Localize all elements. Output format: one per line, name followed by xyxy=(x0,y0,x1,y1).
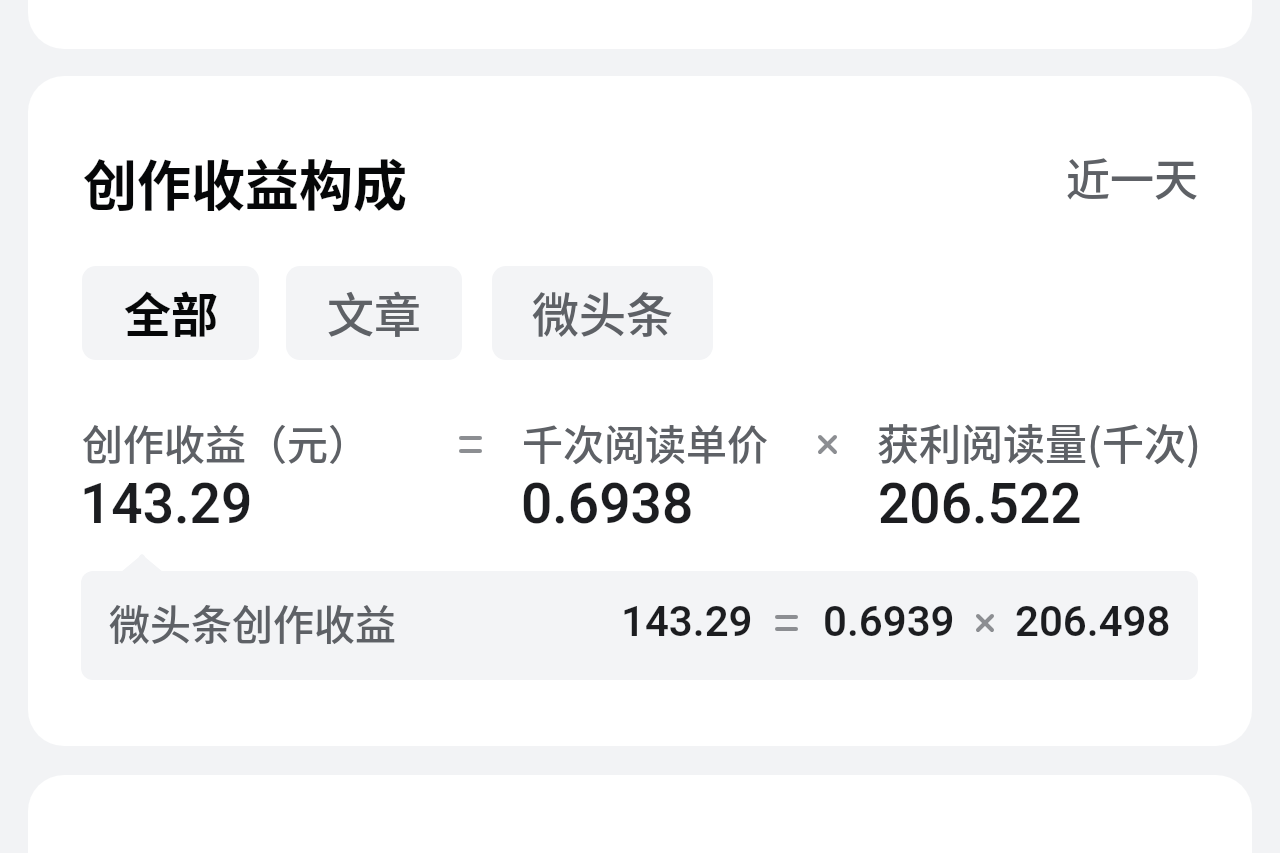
staticText: 创作收益构成 xyxy=(83,143,407,221)
staticText: 文章 xyxy=(327,277,421,345)
staticText: 微头条创作收益 xyxy=(109,592,396,651)
button[interactable]: 微头条 xyxy=(492,266,713,360)
staticText: 0.6938 xyxy=(521,465,694,546)
staticText: 0.6939 xyxy=(823,592,955,654)
staticText: 创作收益（元） xyxy=(82,412,369,471)
button[interactable]: 近一天 xyxy=(1045,139,1218,215)
button[interactable]: 文章 xyxy=(286,266,462,360)
staticText: 微头条 xyxy=(532,277,673,345)
staticText: 千次阅读单价 xyxy=(522,412,768,471)
staticText: 143.29 xyxy=(80,465,253,546)
staticText: 近一天 xyxy=(1066,145,1198,209)
button[interactable]: 微头条创作收益 xyxy=(81,571,1198,680)
staticText: 获利阅读量(千次) xyxy=(877,411,1201,472)
staticText: 全部 xyxy=(124,277,218,345)
staticText: 206.522 xyxy=(878,465,1082,546)
staticText: 206.498 xyxy=(1015,592,1171,654)
button[interactable]: 全部 xyxy=(82,266,259,360)
staticText: 143.29 xyxy=(621,592,753,654)
